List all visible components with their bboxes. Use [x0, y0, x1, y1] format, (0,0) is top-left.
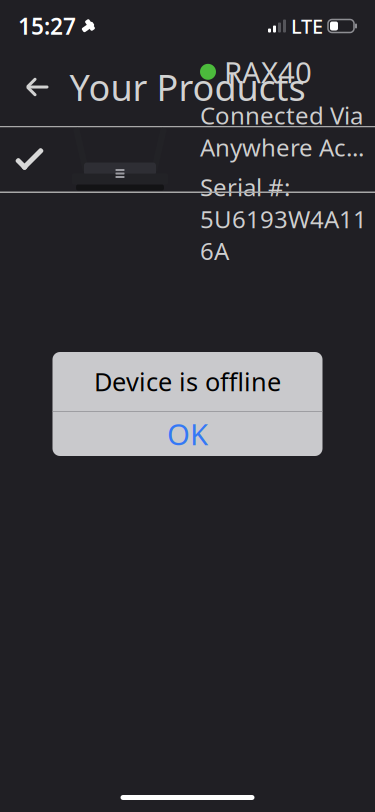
staticText: RAX40: [224, 52, 312, 91]
staticText: Serial #: 5U6193W4A116A: [200, 171, 367, 267]
staticText: Device is offline: [94, 365, 281, 398]
staticText: OK: [167, 414, 208, 453]
staticText: LTE: [291, 13, 323, 39]
staticText: 15:27: [18, 11, 76, 41]
staticText: Your Products: [69, 63, 305, 111]
staticText: Connected Via Anywhere Ac...: [200, 99, 364, 163]
button[interactable]: OK: [52, 412, 322, 456]
button[interactable]: RAX40: [0, 127, 375, 191]
button[interactable]: Back: [9, 59, 65, 115]
